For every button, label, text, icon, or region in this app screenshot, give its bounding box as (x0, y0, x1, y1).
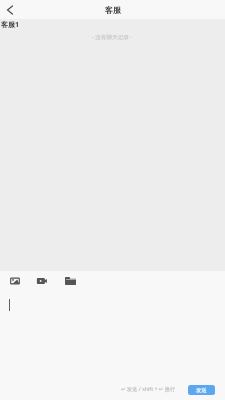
button[interactable]: Send image (7, 273, 23, 289)
button[interactable]: Send video (34, 273, 50, 289)
button[interactable]: Send file (61, 273, 77, 289)
staticText: 发送 (196, 387, 207, 394)
button[interactable]: Back (0, 0, 20, 19)
staticText: ↵ 发送 / shift + ↵ 换行 (121, 385, 176, 392)
staticText: 客服1 (1, 20, 20, 30)
button[interactable]: 发送 (188, 385, 215, 395)
button[interactable]: Message input (0, 291, 225, 376)
staticText: 客服 (105, 5, 121, 15)
staticText: - 没有聊天记录 - (92, 33, 133, 41)
